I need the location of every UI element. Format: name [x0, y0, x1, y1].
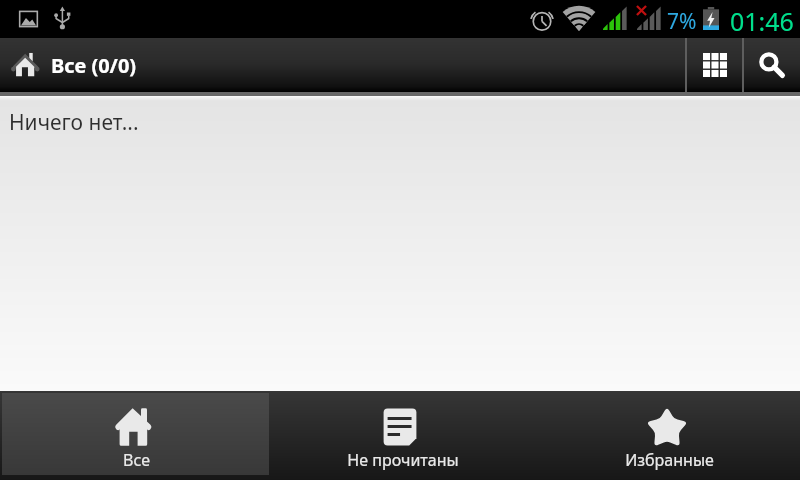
- staticText: Избранные: [625, 449, 714, 471]
- button[interactable]: Избранные: [533, 391, 800, 480]
- staticText: 7%: [667, 7, 697, 36]
- staticText: Все: [123, 449, 150, 471]
- staticText: Все (0/0): [51, 52, 137, 79]
- button[interactable]: Не прочитаны: [266, 391, 533, 480]
- button[interactable]: Все (0/0): [0, 38, 685, 92]
- staticText: Не прочитаны: [347, 449, 459, 471]
- staticText: 01:46: [730, 4, 794, 38]
- staticText: Ничего нет...: [9, 108, 139, 137]
- button[interactable]: Search: [744, 38, 800, 92]
- button[interactable]: Все: [0, 391, 266, 480]
- button[interactable]: Grid view: [687, 38, 742, 92]
